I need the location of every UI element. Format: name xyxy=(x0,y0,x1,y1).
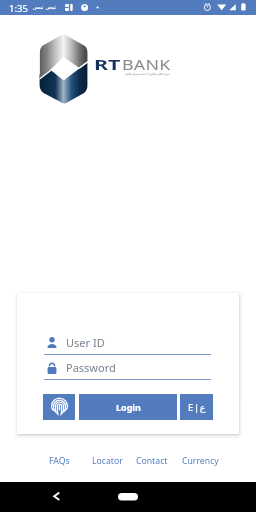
staticText: Password xyxy=(66,360,116,375)
button[interactable]: Password xyxy=(44,358,212,376)
staticText: Contact xyxy=(136,455,168,467)
button[interactable]: Back xyxy=(44,482,68,512)
staticText: مصرف الإقليم التجاري | خدمات مصرفية متكا… xyxy=(125,72,170,76)
staticText: BANK xyxy=(122,54,171,74)
button[interactable]: Login xyxy=(79,394,177,420)
button[interactable]: Locator xyxy=(87,452,128,469)
button[interactable]: Currency xyxy=(177,452,223,469)
staticText: Login xyxy=(116,401,141,413)
staticText: RT xyxy=(94,54,121,74)
button[interactable]: Contact xyxy=(131,452,173,469)
button[interactable]: Fingerprint login xyxy=(43,394,75,420)
staticText: Locator xyxy=(92,455,123,467)
button[interactable]: Home xyxy=(108,482,148,512)
staticText: E|ع xyxy=(188,401,206,414)
staticText: FAQs xyxy=(49,455,70,467)
button[interactable]: FAQs xyxy=(44,452,74,469)
button[interactable]: User ID xyxy=(44,333,212,351)
button[interactable]: E|ع xyxy=(180,394,213,420)
staticText: Currency xyxy=(182,455,219,467)
staticText: تبعض تبعض xyxy=(33,4,56,10)
staticText: 1:35 xyxy=(9,2,28,15)
staticText: User ID xyxy=(66,335,105,350)
